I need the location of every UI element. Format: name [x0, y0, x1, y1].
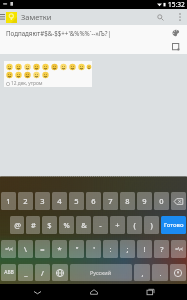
button[interactable]: Switch language: [52, 264, 68, 281]
button[interactable]: &: [76, 216, 91, 234]
button[interactable]: =\<: [1, 240, 16, 258]
button[interactable]: 6: [86, 192, 101, 210]
staticText: _: [24, 268, 28, 278]
button[interactable]: ;: [120, 240, 135, 258]
button[interactable]: Подпадяют#$&-$$++'&%%%´--»Љ?|: [0, 25, 164, 54]
staticText: (: [133, 220, 136, 230]
button[interactable]: %: [59, 216, 74, 234]
button[interactable]: Change colour: [170, 27, 182, 39]
button[interactable]: *: [52, 240, 67, 258]
button[interactable]: 8: [120, 192, 135, 210]
staticText: 7: [108, 196, 113, 206]
button[interactable]: ): [144, 216, 159, 234]
staticText: 15:32: [168, 0, 185, 9]
button[interactable]: +: [110, 216, 125, 234]
button[interactable]: 7: [103, 192, 118, 210]
button[interactable]: 2: [18, 192, 33, 210]
button[interactable]: Home: [74, 284, 114, 300]
button[interactable]: 3: [35, 192, 50, 210]
staticText: Готово: [164, 221, 184, 229]
button[interactable]: _: [18, 264, 33, 281]
staticText: %: [63, 220, 70, 230]
button[interactable]: Hide keyboard: [17, 284, 57, 300]
button[interactable]: \: [18, 240, 33, 258]
staticText: 9: [142, 196, 147, 206]
staticText: /: [41, 268, 44, 278]
staticText: ;: [126, 244, 129, 254]
button[interactable]: :: [103, 240, 118, 258]
staticText: =\<: [5, 246, 13, 253]
staticText: #: [31, 220, 36, 230]
button[interactable]: Add image: [170, 41, 182, 53]
staticText: +: [115, 220, 120, 230]
staticText: .: [159, 268, 162, 278]
staticText: ): [150, 220, 153, 230]
staticText: &: [81, 220, 87, 230]
staticText: -: [99, 220, 102, 230]
button[interactable]: 4: [52, 192, 67, 210]
button[interactable]: Русский: [70, 264, 132, 281]
button[interactable]: =: [35, 240, 50, 258]
button[interactable]: 1: [1, 192, 16, 210]
staticText: \: [24, 244, 27, 254]
staticText: ?: [160, 244, 164, 254]
staticText: $: [47, 220, 52, 230]
button[interactable]: Search: [152, 9, 169, 25]
button[interactable]: !: [137, 240, 152, 258]
button[interactable]: 0: [154, 192, 169, 210]
staticText: 12 дек, утром: [11, 80, 43, 87]
staticText: ,: [141, 268, 144, 278]
button[interactable]: /: [35, 264, 50, 281]
staticText: 4: [57, 196, 62, 206]
staticText: *: [57, 244, 62, 254]
button[interactable]: Voice input: [170, 264, 186, 281]
button[interactable]: ,: [134, 264, 150, 281]
button[interactable]: Open navigation drawer: [0, 9, 5, 25]
staticText: :: [109, 244, 112, 254]
button[interactable]: -: [93, 216, 108, 234]
staticText: 1: [6, 196, 11, 206]
button[interactable]: .: [152, 264, 168, 281]
button[interactable]: 9: [137, 192, 152, 210]
staticText: =: [40, 244, 45, 254]
staticText: ': [93, 244, 95, 254]
staticText: АБВ: [4, 269, 14, 276]
button[interactable]: @: [10, 216, 24, 234]
button[interactable]: (: [127, 216, 142, 234]
staticText: 2: [23, 196, 28, 206]
staticText: Заметки: [21, 12, 52, 22]
staticText: 5: [74, 196, 79, 206]
button[interactable]: ": [69, 240, 84, 258]
button[interactable]: Готово: [161, 216, 186, 234]
staticText: Подпадяют#$&-$$++'&%%%´--»Љ?|: [6, 29, 111, 37]
staticText: 8: [125, 196, 130, 206]
staticText: Русский: [90, 269, 112, 276]
button[interactable]: 5: [69, 192, 84, 210]
button[interactable]: Recent apps: [130, 284, 170, 300]
button[interactable]: #: [26, 216, 40, 234]
button[interactable]: Backspace: [171, 192, 186, 210]
staticText: =\<: [175, 246, 183, 253]
staticText: !: [143, 244, 146, 254]
button[interactable]: ': [86, 240, 101, 258]
button[interactable]: More options: [172, 9, 187, 25]
staticText: @: [14, 220, 21, 230]
button[interactable]: АБВ: [1, 264, 16, 281]
button[interactable]: ?: [154, 240, 169, 258]
staticText: 3: [40, 196, 45, 206]
staticText: ": [75, 244, 79, 254]
staticText: 6: [91, 196, 96, 206]
button[interactable]: Keep: [6, 12, 17, 23]
button[interactable]: =\<: [171, 240, 186, 258]
staticText: 0: [159, 196, 164, 206]
button[interactable]: $: [42, 216, 57, 234]
